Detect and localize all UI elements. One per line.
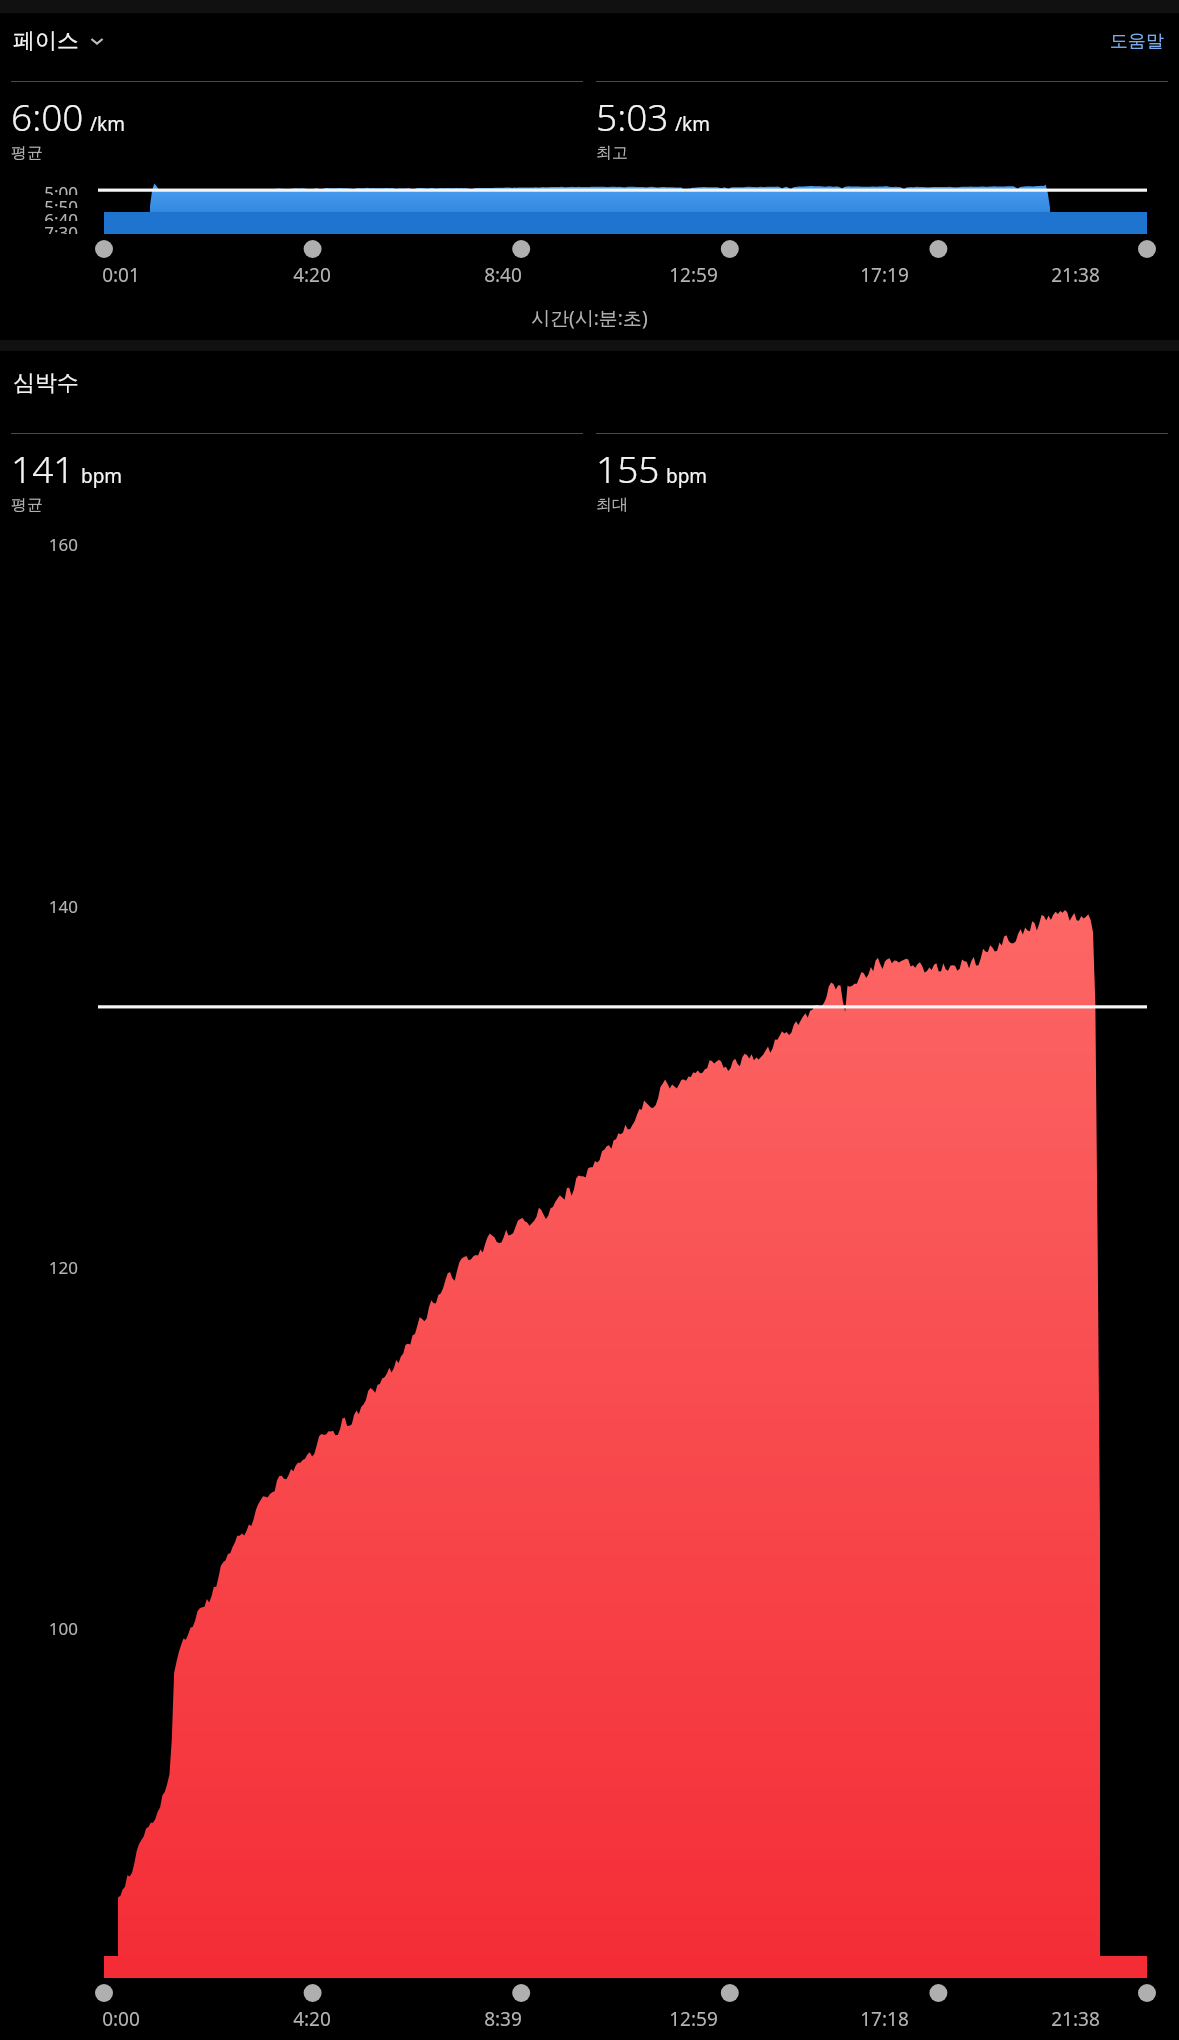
staticText: 21:38	[1051, 2006, 1100, 2032]
staticText: /km	[675, 111, 710, 137]
staticText: 6:40	[44, 208, 78, 221]
staticText: 120	[48, 1256, 78, 1279]
staticText: 7:30	[44, 221, 78, 234]
staticText: 심박수	[13, 369, 79, 397]
button[interactable]: 심박수	[0, 365, 92, 401]
staticText: 160	[48, 533, 78, 556]
staticText: 4:20	[293, 262, 331, 288]
staticText: 최대	[596, 495, 628, 515]
staticText: 6:00	[11, 91, 84, 141]
staticText: bpm	[666, 463, 708, 489]
staticText: 8:40	[484, 262, 522, 288]
staticText: 5:00	[44, 181, 78, 195]
staticText: 시간(시:분:초)	[531, 305, 648, 331]
button[interactable]: 도움말	[1106, 24, 1168, 59]
staticText: 페이스	[13, 27, 79, 55]
staticText: /km	[90, 111, 125, 137]
staticText: 140	[48, 895, 78, 918]
staticText: 5:03	[596, 91, 669, 141]
staticText: 0:01	[102, 262, 140, 288]
staticText: 17:18	[860, 2006, 909, 2032]
staticText: 도움말	[1110, 30, 1164, 53]
staticText: 100	[48, 1617, 78, 1640]
staticText: 8:39	[484, 2006, 522, 2032]
staticText: 0:00	[102, 2006, 140, 2032]
staticText: 최고	[596, 143, 628, 163]
staticText: 평균	[11, 495, 43, 515]
staticText: 12:59	[669, 2006, 718, 2032]
staticText: 4:20	[293, 2006, 331, 2032]
staticText: 5:50	[44, 195, 78, 208]
staticText: 155	[596, 443, 660, 493]
staticText: 12:59	[669, 262, 718, 288]
staticText: 평균	[11, 143, 43, 163]
button[interactable]: 페이스	[11, 23, 109, 59]
staticText: 21:38	[1051, 262, 1100, 288]
staticText: bpm	[81, 463, 123, 489]
staticText: 141	[11, 443, 75, 493]
staticText: 17:19	[860, 262, 909, 288]
